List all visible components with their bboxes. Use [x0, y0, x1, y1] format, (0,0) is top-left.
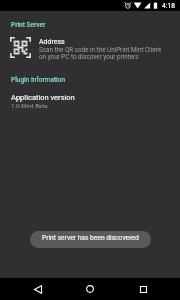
staticText: 4:18 — [162, 2, 175, 10]
staticText: Print server has been discovered — [42, 234, 139, 242]
staticText: Application version — [11, 93, 75, 102]
button[interactable]: Recent apps — [128, 278, 158, 300]
button[interactable]: Print server has been discovered — [30, 231, 151, 248]
button[interactable]: Back — [23, 278, 53, 300]
staticText: Address — [39, 38, 65, 46]
button[interactable]: Application version — [0, 86, 180, 113]
staticText: Print Server — [11, 21, 46, 29]
button[interactable]: Address — [0, 31, 180, 63]
staticText: Plugin Information — [11, 76, 66, 84]
staticText: 1.0-Mint Beta — [11, 102, 48, 109]
staticText: Scan the QR code in the UniPrint Mint Cl… — [39, 46, 169, 60]
button[interactable]: Home — [75, 278, 105, 300]
